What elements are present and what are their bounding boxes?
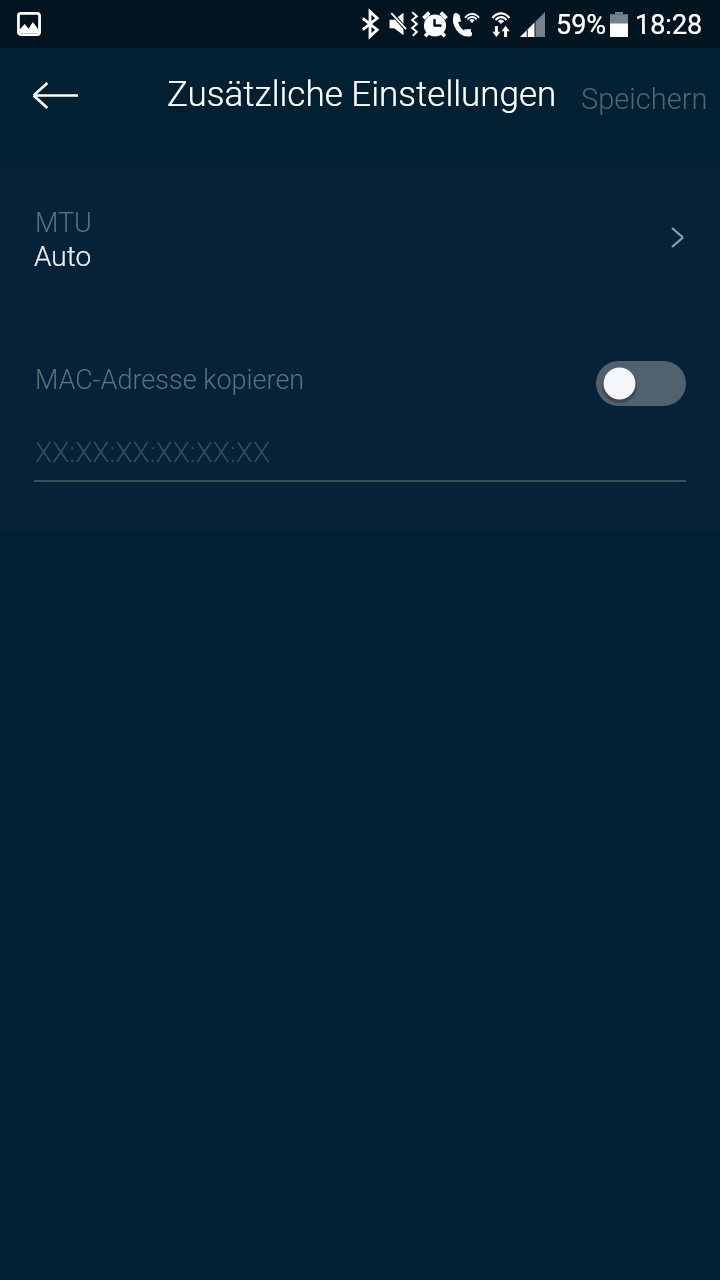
staticText: 59% [556,9,607,41]
staticText: XX:XX:XX:XX:XX:XX [35,436,271,469]
staticText: Auto [34,240,92,273]
button[interactable]: Speichern [560,66,720,132]
staticText: 18:28 [635,9,703,41]
staticText: MTU [35,207,92,239]
button[interactable]: MTU [0,190,720,286]
staticText: MAC-Adresse kopieren [35,364,305,396]
button[interactable]: MAC-Adresse kopieren toggle [596,361,686,406]
staticText: Speichern [581,82,708,116]
staticText: Zusätzliche Einstellungen [167,74,557,115]
button[interactable]: MAC-Adresse kopieren [0,348,720,418]
button[interactable]: Back [20,60,90,130]
